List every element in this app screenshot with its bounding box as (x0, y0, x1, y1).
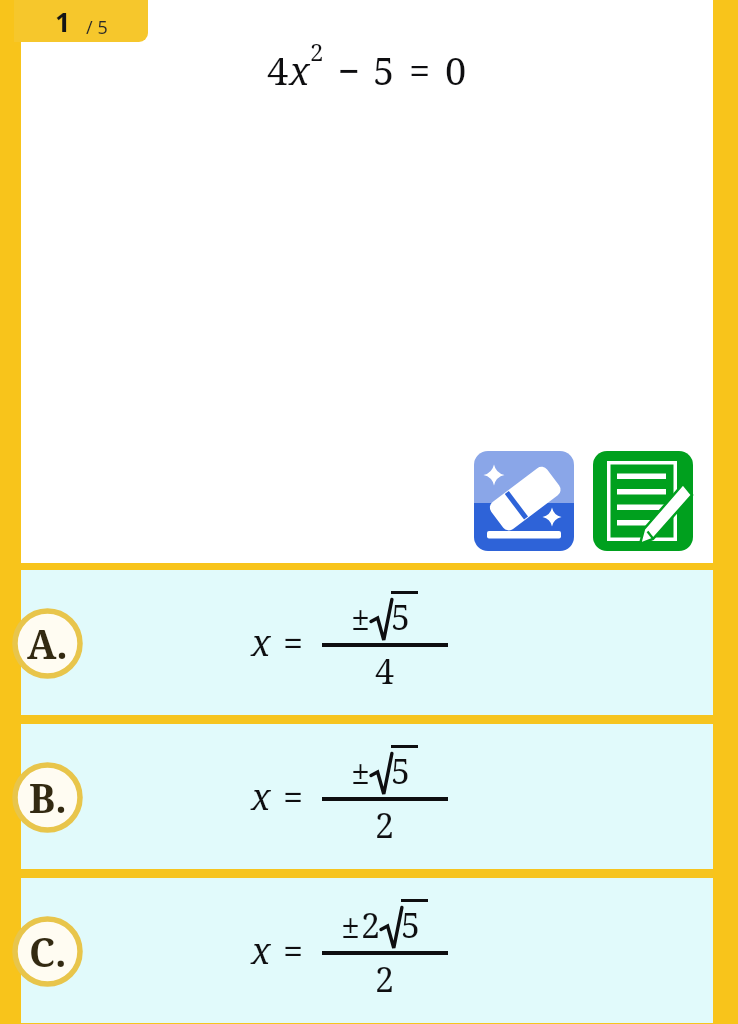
staticText: 5 (391, 594, 411, 640)
staticText: = (283, 618, 304, 667)
button[interactable]: x (21, 570, 713, 715)
staticText: B. (29, 771, 67, 824)
staticText: = (409, 44, 431, 96)
staticText: / 5 (86, 15, 108, 40)
staticText: 2 (375, 802, 395, 848)
button[interactable]: 1 (14, 0, 148, 42)
staticText: − (338, 44, 361, 96)
staticText: 1 (55, 3, 71, 40)
staticText: 0 (445, 44, 467, 96)
staticText: x (251, 772, 271, 821)
button[interactable]: Erase drawing (474, 451, 574, 551)
staticText: ± (351, 594, 371, 640)
button[interactable]: Open notes (593, 451, 693, 551)
staticText: C. (29, 925, 67, 978)
staticText: 5 (401, 902, 421, 948)
button[interactable]: x (21, 724, 713, 869)
button[interactable]: A. (11, 607, 84, 680)
staticText: 4 (267, 44, 289, 96)
staticText: x (251, 618, 271, 667)
staticText: 4 (375, 648, 395, 694)
button[interactable]: C. (11, 915, 84, 988)
button[interactable]: B. (11, 761, 84, 834)
staticText: x (251, 926, 271, 975)
staticText: 2 (375, 956, 395, 1002)
staticText: = (283, 926, 304, 975)
staticText: 2 (310, 35, 324, 68)
staticText: ± (341, 902, 361, 948)
staticText: ± (351, 748, 371, 794)
staticText: = (283, 772, 304, 821)
staticText: 5 (373, 44, 395, 96)
staticText: A. (27, 617, 68, 670)
staticText: 2 (361, 902, 381, 948)
staticText: 5 (391, 748, 411, 794)
staticText: x (289, 44, 310, 96)
button[interactable]: x (21, 878, 713, 1023)
